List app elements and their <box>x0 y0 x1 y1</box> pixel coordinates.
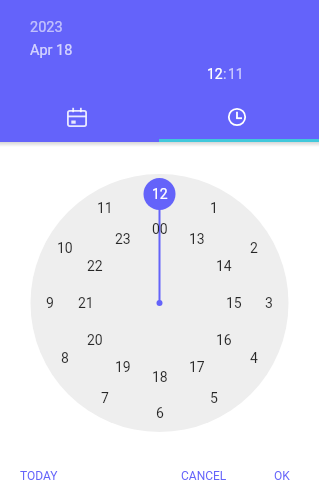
staticText: 12 <box>207 66 223 82</box>
button[interactable]: 17 <box>173 353 221 381</box>
button[interactable]: 3 <box>245 289 293 317</box>
button[interactable]: 8 <box>41 344 89 372</box>
button[interactable]: 22 <box>71 252 119 280</box>
staticText: 14 <box>216 258 232 274</box>
staticText: 8 <box>61 350 69 366</box>
staticText: 11 <box>97 200 113 216</box>
staticText: 6 <box>156 405 164 421</box>
staticText: 19 <box>115 359 131 375</box>
button[interactable] <box>159 92 319 142</box>
button[interactable]: 1 <box>190 194 238 222</box>
button[interactable]: 00 <box>136 215 184 243</box>
staticText: 15 <box>226 295 242 311</box>
staticText: 9 <box>46 295 54 311</box>
button[interactable]: 5 <box>190 384 238 412</box>
button[interactable]: 18 <box>136 363 184 391</box>
button[interactable]: 4 <box>230 344 278 372</box>
staticText: Apr 18 <box>30 42 73 59</box>
staticText: 10 <box>57 240 73 256</box>
button[interactable]: 6 <box>136 399 184 427</box>
button[interactable]: 7 <box>81 384 129 412</box>
button[interactable]: 21 <box>62 289 110 317</box>
staticText: 1 <box>210 200 218 216</box>
staticText: 11 <box>228 66 244 82</box>
button[interactable] <box>0 92 159 142</box>
staticText: 16 <box>216 332 232 348</box>
button[interactable]: 19 <box>99 353 147 381</box>
button[interactable]: TODAY <box>8 459 70 493</box>
staticText: 23 <box>115 231 131 247</box>
staticText: 5 <box>210 390 218 406</box>
button[interactable]: OK <box>262 459 302 493</box>
staticText: TODAY <box>20 469 58 483</box>
staticText: 17 <box>189 359 205 375</box>
staticText: 4 <box>250 350 258 366</box>
button[interactable]: 11 <box>228 62 248 86</box>
staticText: CANCEL <box>181 469 227 483</box>
button[interactable]: 10 <box>41 234 89 262</box>
button[interactable]: 13 <box>173 225 221 253</box>
staticText: 7 <box>101 390 109 406</box>
staticText: 13 <box>189 231 205 247</box>
staticText: 2 <box>250 240 258 256</box>
staticText: 2023 <box>30 19 63 36</box>
staticText: 18 <box>152 369 168 385</box>
staticText: 21 <box>78 295 94 311</box>
staticText: 3 <box>265 295 273 311</box>
staticText: 12 <box>152 186 168 202</box>
button[interactable]: 11 <box>81 194 129 222</box>
staticText: 22 <box>87 258 103 274</box>
button[interactable]: 16 <box>200 326 248 354</box>
staticText: OK <box>274 469 290 483</box>
staticText: 00 <box>152 221 168 237</box>
button[interactable]: 2023 <box>26 15 67 40</box>
button[interactable]: Apr 18 <box>26 38 77 63</box>
button[interactable]: 20 <box>71 326 119 354</box>
button[interactable]: 2 <box>230 234 278 262</box>
button[interactable]: 9 <box>26 289 74 317</box>
staticText: : <box>223 66 227 82</box>
staticText: 20 <box>87 332 103 348</box>
button[interactable]: 15 <box>210 289 258 317</box>
button[interactable]: CANCEL <box>169 459 239 493</box>
button[interactable]: 14 <box>200 252 248 280</box>
button[interactable]: 23 <box>99 225 147 253</box>
button[interactable]: 12 <box>205 62 223 86</box>
